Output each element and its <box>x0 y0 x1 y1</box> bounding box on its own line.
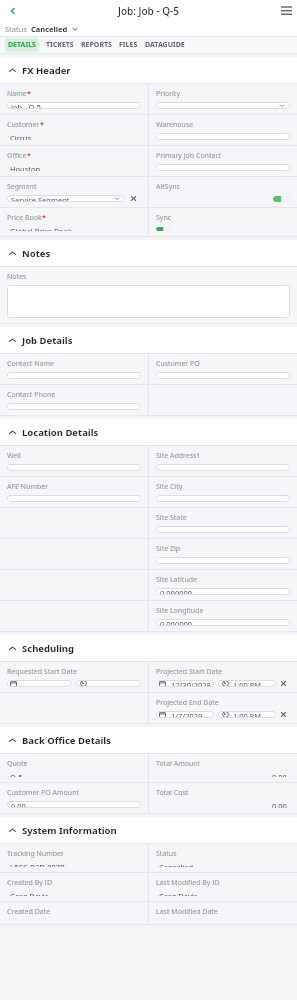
staticText: Customer <box>7 120 40 130</box>
staticText: TICKETS <box>46 40 74 50</box>
button[interactable] <box>156 164 290 171</box>
button[interactable]: Clear Projected Start Date <box>276 680 290 687</box>
staticText: Site Latitude <box>156 575 197 585</box>
staticText: Customer PO Amount <box>7 788 80 798</box>
staticText: * <box>27 151 31 161</box>
button[interactable] <box>76 680 141 687</box>
staticText: 1/7/2029 <box>171 711 203 718</box>
staticText: Job - Q-5 <box>11 102 42 109</box>
button[interactable] <box>7 495 141 502</box>
button[interactable]: Status <box>0 22 297 36</box>
button[interactable]: 1:00 PM <box>218 680 276 687</box>
button[interactable]: AltSync toggle <box>273 196 290 202</box>
staticText: Notes <box>22 247 51 260</box>
staticText: * <box>40 120 44 130</box>
button[interactable]: Job Details <box>0 327 297 353</box>
button[interactable]: TICKETS <box>46 38 74 52</box>
staticText: Warehouse <box>156 120 194 130</box>
button[interactable]: 12/30/2028 <box>156 680 214 687</box>
button[interactable]: Clear Projected End Date <box>276 711 290 718</box>
staticText: Job Details <box>22 334 73 347</box>
staticText: 1:00 PM <box>233 711 262 718</box>
button[interactable] <box>156 102 290 109</box>
button[interactable] <box>156 495 290 502</box>
staticText: Well <box>7 451 21 461</box>
staticText: Job: Job - Q-5 <box>118 4 179 18</box>
button[interactable] <box>156 133 290 140</box>
button[interactable]: 1/7/2029 <box>156 711 214 718</box>
staticText: * <box>27 89 31 99</box>
staticText: Contact Phone <box>7 390 56 400</box>
staticText: Contact Name <box>7 359 54 369</box>
button[interactable] <box>156 464 290 471</box>
button[interactable] <box>156 557 290 564</box>
staticText: Total Amount <box>156 759 201 769</box>
button[interactable]: Back <box>4 0 22 22</box>
staticText: Primary Job Contact <box>156 151 222 161</box>
button[interactable] <box>156 526 290 533</box>
button[interactable] <box>7 464 141 471</box>
button[interactable]: FILES <box>119 38 138 52</box>
button[interactable] <box>156 372 290 379</box>
button[interactable]: 0.00 <box>7 801 141 808</box>
button[interactable]: Job - Q-5 <box>7 102 141 109</box>
staticText: Quote <box>7 759 28 769</box>
staticText: Total Cost <box>156 788 189 798</box>
staticText: Greg Davis <box>10 891 49 896</box>
button[interactable]: FX Header <box>0 57 297 83</box>
button[interactable]: DETAILS <box>5 38 39 52</box>
staticText: Last Modified By ID <box>156 878 220 888</box>
button[interactable]: Location Details <box>0 419 297 445</box>
staticText: AltSync <box>156 182 180 192</box>
staticText: AFE Number <box>7 482 49 492</box>
staticText: Office <box>7 151 27 161</box>
staticText: Site Address1 <box>156 451 201 461</box>
button[interactable]: Service Segment <box>7 195 125 202</box>
staticText: Created By ID <box>7 878 53 888</box>
staticText: 0.000000 <box>160 588 193 595</box>
button[interactable]: Menu <box>275 0 297 22</box>
staticText: 1:00 PM <box>233 680 262 687</box>
staticText: Site Zip <box>156 544 181 554</box>
staticText: Cancelled <box>159 862 194 867</box>
staticText: Last Modified Date <box>156 907 218 917</box>
staticText: Location Details <box>22 426 99 439</box>
staticText: Requested Start Date <box>7 667 77 677</box>
button[interactable]: Clear Segment <box>125 195 141 202</box>
staticText: Site City <box>156 482 183 492</box>
button[interactable]: 0.000000 <box>156 588 290 595</box>
staticText: 0.000000 <box>160 619 193 626</box>
button[interactable]: 0.000000 <box>156 619 290 626</box>
button[interactable]: System Information <box>0 817 297 843</box>
button[interactable]: REPORTS <box>81 38 112 52</box>
button[interactable] <box>7 372 141 379</box>
staticText: Price Book <box>7 213 42 223</box>
staticText: Site State <box>156 513 187 523</box>
staticText: Sync <box>156 213 172 223</box>
button[interactable]: Back Office Details <box>0 727 297 753</box>
staticText: Created Date <box>7 907 51 917</box>
button[interactable]: 1:00 PM <box>218 711 276 718</box>
staticText: Q-5 <box>10 772 23 777</box>
staticText: Cancelled <box>31 24 68 34</box>
button[interactable] <box>7 680 72 687</box>
staticText: DATAGUIDE <box>145 40 185 50</box>
staticText: Back Office Details <box>22 734 111 747</box>
staticText: DETAILS <box>8 40 36 50</box>
button[interactable]: Sync toggle <box>156 227 171 231</box>
staticText: J-5EC-B2D-007B <box>10 862 65 867</box>
staticText: 0.00 <box>272 772 287 777</box>
button[interactable]: Notes <box>0 240 297 266</box>
staticText: Customer PO <box>156 359 200 369</box>
staticText: Name <box>7 89 27 99</box>
staticText: 12/30/2028 <box>171 680 211 687</box>
staticText: Site Longitude <box>156 606 204 616</box>
button[interactable] <box>7 403 141 410</box>
staticText: FX Header <box>22 64 71 77</box>
staticText: System Information <box>22 824 117 837</box>
staticText: Notes <box>7 272 27 282</box>
button[interactable] <box>7 285 290 318</box>
staticText: Status <box>156 849 177 859</box>
button[interactable]: Scheduling <box>0 635 297 661</box>
button[interactable]: DATAGUIDE <box>145 38 185 52</box>
